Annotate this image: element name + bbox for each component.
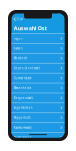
staticText: Kamen xyxy=(14,47,23,50)
staticText: Marienheide xyxy=(14,86,32,90)
staticText: Chart xyxy=(16,17,23,21)
button[interactable]: Chart xyxy=(11,15,64,23)
staticText: Hückeswagen xyxy=(14,136,32,139)
button[interactable]: Hagen xyxy=(11,33,64,43)
button[interactable]: Bergneustadt xyxy=(11,93,64,102)
button[interactable]: Meschede xyxy=(11,53,64,63)
staticText: Gummersbach xyxy=(14,76,32,80)
staticText: Bergneustadt xyxy=(14,96,33,100)
staticText: 9:41 xyxy=(15,10,22,14)
staticText: Hagen xyxy=(14,37,23,40)
staticText: Wipperfürth xyxy=(14,116,31,119)
staticText: Meschede xyxy=(14,56,28,60)
button[interactable]: Wipperfürth xyxy=(11,112,64,122)
staticText: Siegen-Lennestadt xyxy=(14,66,40,70)
button[interactable]: Kamen xyxy=(11,43,64,53)
button[interactable]: Hückeswagen xyxy=(11,132,64,142)
staticText: ▮▮▮ xyxy=(58,11,61,14)
button[interactable]: Marienheide xyxy=(11,83,64,93)
button[interactable]: Engelskirchen xyxy=(11,102,64,112)
button[interactable]: Gummersbach xyxy=(11,73,64,83)
button[interactable]: Siegen-Lennestadt xyxy=(11,63,64,73)
staticText: Auswahl Ost xyxy=(14,25,47,32)
button[interactable]: Radevormwald xyxy=(11,122,64,132)
staticText: Engelskirchen xyxy=(14,106,33,109)
staticText: Radevormwald xyxy=(14,126,32,129)
